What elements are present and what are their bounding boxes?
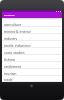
staticText: tourism [4,71,16,76]
button[interactable]: trade [2,76,62,82]
staticText: fishing [4,57,15,62]
staticText: socio studies [4,50,25,55]
button[interactable]: socio studies [2,48,62,55]
staticText: settlement [4,64,21,69]
button[interactable]: textile industries [2,41,62,48]
staticText: industry [4,36,17,41]
button[interactable]: fishing [2,55,62,62]
staticText: textile industries [4,43,31,48]
staticText: trade [4,77,13,82]
staticText: agriculture [4,22,22,27]
button[interactable]: settlement [2,62,62,69]
button[interactable]: industry [2,34,62,41]
staticText: Data Geografis [4,15,14,17]
button[interactable]: mining & energy [2,27,62,34]
button[interactable]: agriculture [2,20,62,27]
button[interactable]: Data Geografis [2,12,62,18]
staticText: mining & energy [4,29,31,34]
button[interactable]: tourism [2,69,62,76]
